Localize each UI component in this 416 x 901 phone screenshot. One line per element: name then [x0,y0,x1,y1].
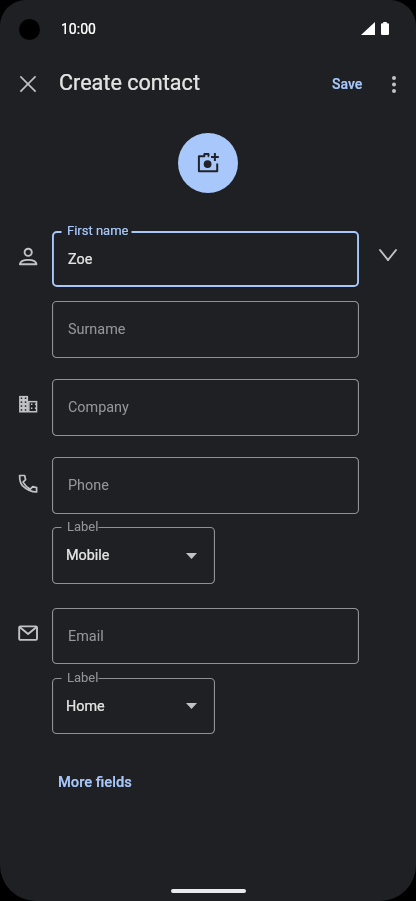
button[interactable]: More fields [52,767,138,796]
staticText: 10:00 [61,21,96,37]
staticText: First name [67,223,129,238]
staticText: Mobile [66,547,110,564]
button[interactable]: Add photo [178,133,238,193]
staticText: Label [67,519,99,534]
staticText: Company [68,399,129,416]
staticText: Home [66,698,105,715]
button[interactable]: More options [374,64,414,104]
staticText: Surname [68,321,126,338]
staticText: Email [68,628,104,645]
staticText: Zoe [68,251,93,268]
staticText: More fields [58,773,132,790]
button[interactable]: Company [52,379,359,436]
button[interactable]: Phone [52,457,359,514]
staticText: Phone [68,477,109,494]
button[interactable]: Close [8,64,48,104]
button[interactable]: Label [52,678,215,734]
button[interactable]: First name [52,231,359,287]
button[interactable]: Save [322,70,373,98]
button[interactable]: Label [52,527,215,584]
button[interactable]: Surname [52,301,359,358]
staticText: Label [67,670,99,685]
button[interactable]: Expand name fields [368,235,408,275]
button[interactable]: Email [52,608,359,664]
staticText: Save [332,76,363,92]
staticText: Create contact [59,70,200,95]
